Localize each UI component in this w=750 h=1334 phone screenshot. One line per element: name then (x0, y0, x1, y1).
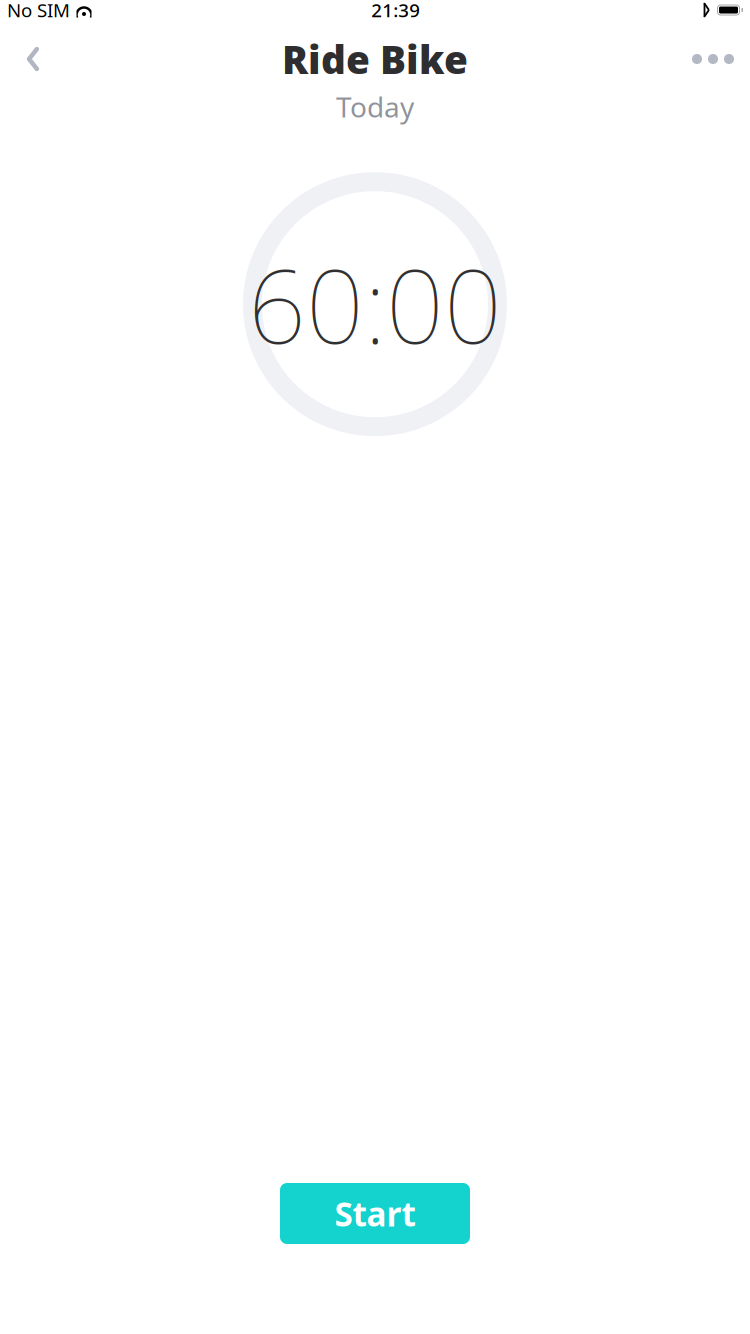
staticText: 21:39 (371, 0, 420, 22)
staticText: No SIM (7, 0, 70, 22)
button[interactable]: More options (687, 37, 739, 81)
staticText: Today (336, 88, 414, 125)
staticText: Start (334, 1191, 415, 1236)
button[interactable]: Back (11, 37, 55, 81)
button[interactable]: Start (280, 1183, 470, 1244)
staticText: 60:00 (248, 237, 502, 371)
staticText: Ride Bike (282, 33, 468, 85)
